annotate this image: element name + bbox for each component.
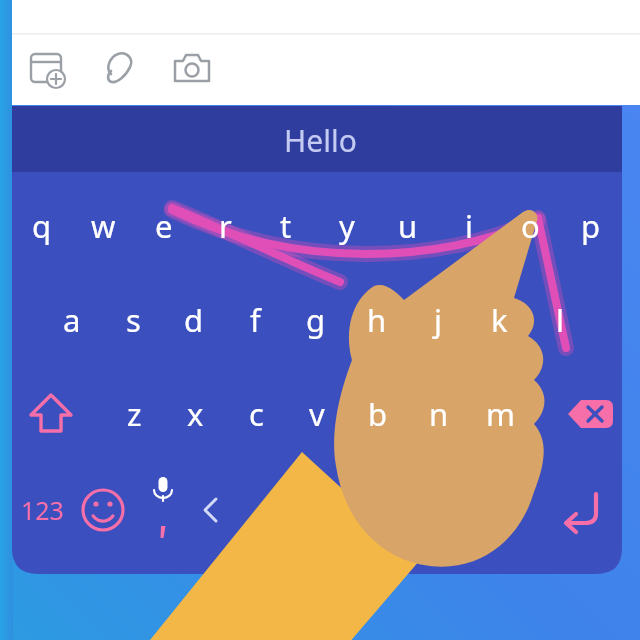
staticText: y — [339, 205, 355, 247]
button[interactable]: j — [410, 291, 466, 349]
button[interactable]: Move cursor left — [182, 482, 238, 538]
button[interactable]: l — [532, 291, 588, 349]
button[interactable]: Hello — [250, 118, 390, 162]
staticText: r — [219, 205, 232, 247]
button[interactable]: z — [106, 385, 162, 443]
button[interactable]: 123 — [14, 484, 70, 536]
button[interactable]: Camera — [168, 44, 216, 92]
button[interactable]: Enter — [552, 482, 610, 540]
staticText: f — [250, 299, 261, 341]
button[interactable]: New note — [22, 44, 70, 92]
button[interactable]: r — [197, 197, 253, 255]
button[interactable]: Voice input — [135, 482, 191, 538]
button[interactable]: a — [44, 291, 100, 349]
button[interactable]: x — [167, 385, 223, 443]
button[interactable]: g — [288, 291, 344, 349]
staticText: z — [127, 393, 142, 435]
button[interactable]: y — [319, 197, 375, 255]
button[interactable]: Space — [232, 482, 428, 538]
staticText: v — [309, 393, 325, 435]
button[interactable]: m — [472, 385, 528, 443]
button[interactable]: n — [411, 385, 467, 443]
staticText: p — [581, 205, 601, 247]
staticText: m — [486, 393, 515, 435]
staticText: q — [32, 205, 52, 247]
button[interactable]: Backspace — [561, 386, 619, 444]
staticText: d — [184, 299, 204, 341]
button[interactable]: Shift — [22, 386, 80, 444]
button[interactable]: v — [289, 385, 345, 443]
staticText: n — [429, 393, 449, 435]
button[interactable]: i — [441, 197, 497, 255]
button[interactable]: p — [563, 197, 619, 255]
staticText: o — [521, 205, 540, 247]
staticText: x — [187, 393, 204, 435]
staticText: w — [91, 205, 116, 247]
staticText: u — [398, 205, 418, 247]
staticText: i — [465, 205, 473, 247]
button[interactable]: k — [471, 291, 527, 349]
button[interactable]: h — [349, 291, 405, 349]
button[interactable]: Punctuation — [477, 482, 529, 534]
button[interactable]: e — [136, 197, 192, 255]
button[interactable]: o — [502, 197, 558, 255]
staticText: t — [280, 205, 292, 247]
staticText: h — [367, 299, 387, 341]
button[interactable]: d — [166, 291, 222, 349]
staticText: s — [126, 299, 141, 341]
staticText: Hello — [284, 120, 357, 161]
staticText: l — [556, 299, 564, 341]
button[interactable]: b — [350, 385, 406, 443]
button[interactable]: c — [228, 385, 284, 443]
button[interactable]: t — [258, 197, 314, 255]
button[interactable]: s — [105, 291, 161, 349]
button[interactable]: Emoji — [75, 482, 131, 538]
button[interactable]: q — [14, 197, 70, 255]
staticText: g — [306, 299, 326, 341]
button[interactable]: f — [227, 291, 283, 349]
staticText: 123 — [21, 493, 64, 527]
staticText: a — [63, 299, 81, 341]
staticText: b — [368, 393, 388, 435]
button[interactable]: Attach file — [96, 44, 144, 92]
staticText: c — [249, 393, 264, 435]
button[interactable]: u — [380, 197, 436, 255]
staticText: j — [434, 299, 442, 341]
staticText: e — [155, 205, 173, 247]
staticText: k — [491, 299, 508, 341]
button[interactable]: w — [75, 197, 131, 255]
